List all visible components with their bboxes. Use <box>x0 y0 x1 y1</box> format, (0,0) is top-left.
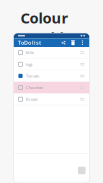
staticText: Chocolate <box>26 85 43 90</box>
staticText: ToDo list <box>18 39 41 46</box>
staticText: Egg <box>26 62 32 67</box>
button[interactable]: Chocolate <box>13 82 89 94</box>
button[interactable]: Egg <box>13 59 89 70</box>
button[interactable]: Add item <box>78 167 85 174</box>
staticText: Bread <box>26 96 37 102</box>
button[interactable]: Delete <box>70 40 76 46</box>
button[interactable]: More options <box>79 40 85 46</box>
button[interactable]: Tomato <box>13 70 89 82</box>
button[interactable]: Share <box>60 40 66 46</box>
staticText: Milk <box>26 50 34 55</box>
button[interactable]: Milk <box>13 47 89 59</box>
staticText: Tomato <box>26 73 39 78</box>
button[interactable]: Bread <box>13 94 89 105</box>
staticText: Colour Marking <box>20 8 82 47</box>
